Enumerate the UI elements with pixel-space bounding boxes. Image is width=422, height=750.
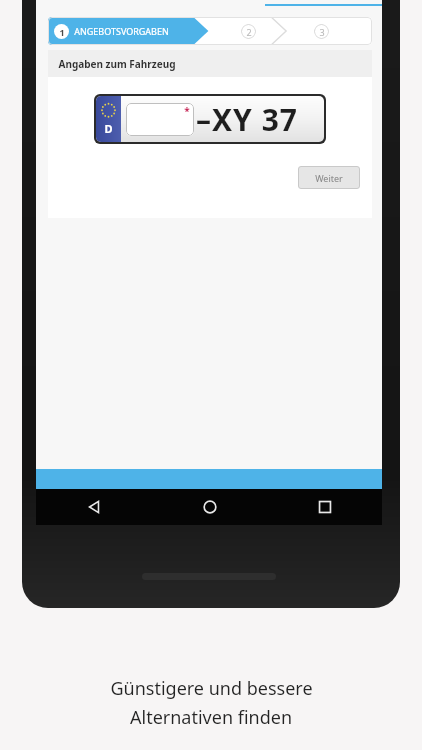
staticText: 3 [319,26,325,38]
staticText: Alternativen finden [130,705,292,730]
staticText: ANGEBOTSVORGABEN [74,25,169,37]
button[interactable]: * [126,103,194,136]
staticText: Günstigere und bessere [110,676,313,701]
staticText: –XY 37 [196,99,298,140]
button[interactable]: Recent apps [267,489,382,525]
button[interactable]: Back [36,489,152,525]
staticText: * [184,104,190,118]
button[interactable]: 1 [54,17,169,45]
button[interactable]: Weiter [298,166,360,189]
button[interactable]: Home [152,489,267,525]
staticText: D [104,121,113,136]
button[interactable]: 2 [228,17,268,45]
staticText: Angaben zum Fahrzeug [58,57,176,71]
staticText: Weiter [315,172,343,184]
staticText: 2 [246,26,252,38]
button[interactable]: 3 [301,17,341,45]
staticText: 1 [59,26,65,38]
